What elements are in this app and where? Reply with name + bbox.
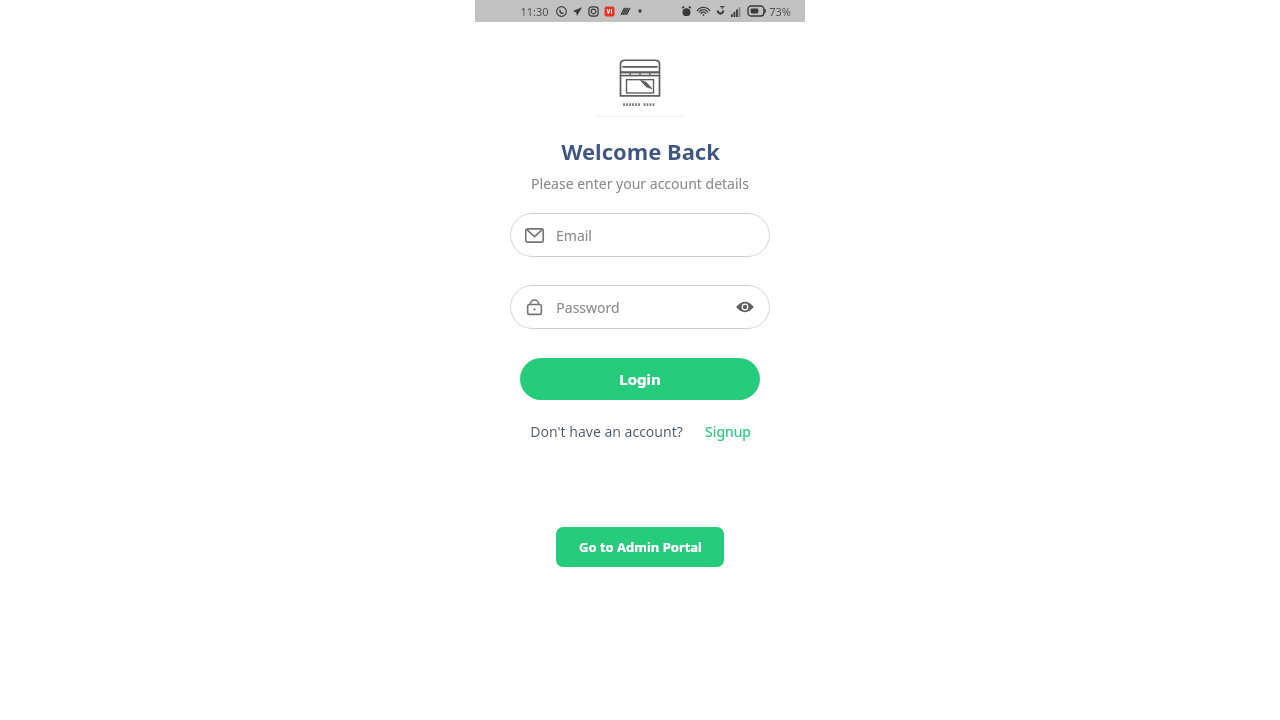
staticText: 73% <box>769 4 791 19</box>
button[interactable]: Signup <box>705 422 751 441</box>
button[interactable]: Go to Admin Portal <box>556 527 724 567</box>
button[interactable]: Login <box>520 358 760 400</box>
staticText: Welcome Back <box>561 136 720 166</box>
staticText: Go to Admin Portal <box>579 538 702 556</box>
staticText: Email <box>556 226 592 245</box>
staticText: Login <box>619 369 661 389</box>
staticText: Please enter your account details <box>531 174 749 193</box>
staticText: Signup <box>705 422 751 441</box>
staticText: Password <box>556 298 620 317</box>
button[interactable]: Password <box>510 285 770 329</box>
staticText: Don't have an account? <box>530 422 683 441</box>
staticText: 11:30 <box>520 4 549 19</box>
button[interactable]: Email <box>510 213 770 257</box>
button[interactable]: Show password <box>735 297 755 317</box>
